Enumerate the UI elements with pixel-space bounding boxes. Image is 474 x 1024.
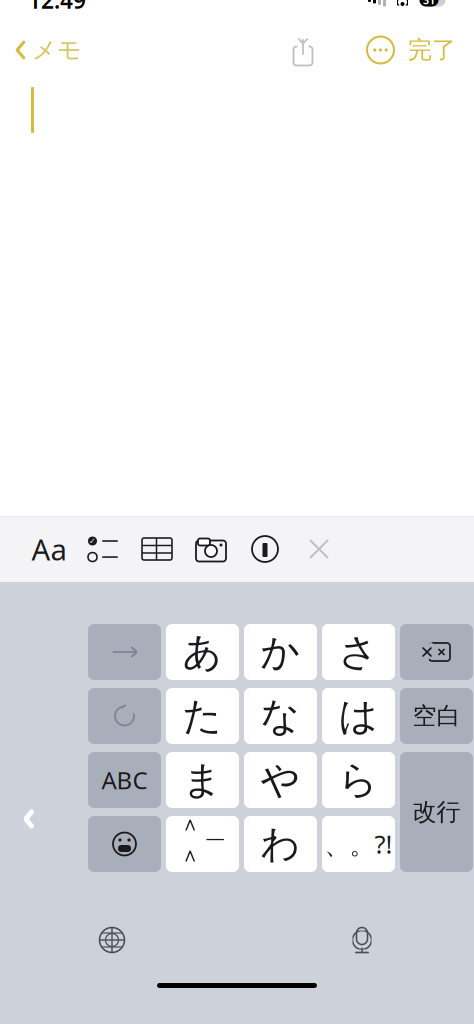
button[interactable]: 、。?! (322, 816, 395, 872)
staticText: 改行 (412, 797, 460, 827)
staticText: Aa (31, 529, 66, 568)
button[interactable]: ら (322, 752, 395, 808)
staticText: ABC (101, 764, 147, 796)
button[interactable]: 次候補 (88, 624, 161, 680)
button[interactable]: メモ (0, 27, 92, 73)
button[interactable]: その他 (359, 28, 402, 71)
button[interactable]: 改行 (400, 752, 473, 872)
button[interactable]: ま (166, 752, 239, 808)
staticText: さ (338, 628, 378, 676)
button[interactable]: 閉じる (292, 517, 346, 581)
button[interactable]: 絵文字 (88, 816, 161, 872)
button[interactable]: 音声入力 (340, 918, 384, 962)
staticText: 空白 (412, 701, 460, 731)
button[interactable]: マークアップ (238, 517, 292, 581)
button[interactable]: 共有 (281, 29, 325, 71)
staticText: な (260, 692, 300, 740)
button[interactable]: 書式 (22, 517, 76, 581)
button[interactable]: は (322, 688, 395, 744)
staticText: ＾＿＾ (177, 813, 227, 875)
staticText: わ (260, 820, 300, 868)
staticText: あ (182, 628, 222, 676)
staticText: ら (338, 756, 378, 804)
staticText: ま (182, 756, 222, 804)
staticText: や (260, 756, 300, 804)
button[interactable]: 表 (130, 517, 184, 581)
staticText: 31 (423, 0, 435, 7)
button[interactable]: 次のキーボード (90, 918, 134, 962)
staticText: た (182, 692, 222, 740)
button[interactable]: や (244, 752, 317, 808)
button[interactable]: わ (244, 816, 317, 872)
button[interactable]: 削除 (400, 624, 473, 680)
button[interactable]: 取り消す (88, 688, 161, 744)
button[interactable]: あ (166, 624, 239, 680)
button[interactable]: カメラ (184, 517, 238, 581)
button[interactable]: 完了 (402, 27, 474, 73)
staticText: 完了 (408, 35, 456, 65)
staticText: 、。?! (324, 827, 392, 861)
button[interactable]: 空白 (400, 688, 473, 744)
staticText: メモ (32, 35, 82, 65)
staticText: か (260, 628, 300, 676)
button[interactable]: た (166, 688, 239, 744)
button[interactable]: チェックリスト (76, 517, 130, 581)
button[interactable]: な (244, 688, 317, 744)
button[interactable]: ＾＿＾ (166, 816, 239, 872)
staticText: は (338, 692, 378, 740)
staticText: 12:49 (28, 0, 86, 15)
button[interactable]: か (244, 624, 317, 680)
button[interactable]: さ (322, 624, 395, 680)
staticText: ✓ (89, 536, 96, 546)
button[interactable]: ABC (88, 752, 161, 808)
